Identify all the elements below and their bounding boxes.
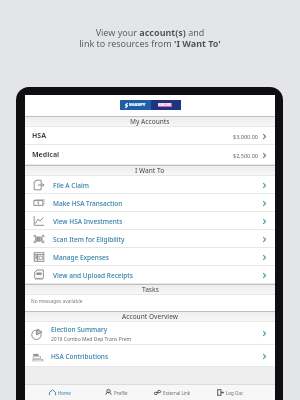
staticText: Profile	[114, 390, 128, 396]
staticText: Home	[58, 390, 71, 396]
staticText: Tasks	[142, 285, 159, 294]
button[interactable]: View HSA Investments	[25, 212, 275, 230]
staticText: Log Out	[226, 390, 243, 396]
button[interactable]: Scan Item for Eligibility	[25, 230, 275, 248]
button[interactable]: Make HSA Transaction	[25, 194, 275, 212]
staticText: $2,500.00	[233, 152, 258, 159]
staticText: Medical	[32, 150, 60, 160]
button[interactable]: File A Claim	[25, 176, 275, 194]
staticText: I Want To	[135, 166, 165, 175]
staticText: HSA Contributions	[51, 352, 109, 361]
staticText: Scan Item for Eligibility	[53, 235, 125, 244]
button[interactable]: Log Out	[201, 385, 258, 400]
staticText: View your account(s) and link to resourc…	[79, 26, 221, 49]
staticText: Election Summary	[51, 325, 108, 334]
button[interactable]: External Link	[144, 385, 201, 400]
button[interactable]: HSA	[25, 127, 275, 145]
button[interactable]: HSA Contributions	[25, 345, 275, 367]
staticText: Account Overview	[122, 312, 178, 321]
button[interactable]: Advertisement banner	[120, 100, 181, 110]
button[interactable]: Medical	[25, 145, 275, 165]
staticText: HSA	[32, 131, 47, 141]
staticText: SHARPY	[129, 102, 146, 108]
staticText: File A Claim	[53, 181, 89, 190]
button[interactable]: Home	[32, 385, 88, 400]
button[interactable]: Election Summary	[25, 322, 275, 345]
button[interactable]: Manage Expenses	[25, 248, 275, 266]
staticText: My Accounts	[130, 117, 170, 126]
button[interactable]: Profile	[88, 385, 144, 400]
staticText: SUBSCRIBE	[158, 103, 172, 107]
staticText: Make HSA Transaction	[53, 199, 123, 208]
staticText: View HSA Investments	[53, 217, 123, 226]
staticText: No messages available	[31, 298, 83, 305]
staticText: View and Upload Receipts	[53, 271, 133, 280]
staticText: External Link	[163, 390, 191, 396]
staticText: Manage Expenses	[53, 253, 109, 262]
button[interactable]: View and Upload Receipts	[25, 266, 275, 284]
staticText: $3,000.00	[233, 133, 258, 140]
staticText: 2019 Combo Med Dep Trans Prem	[51, 336, 132, 343]
